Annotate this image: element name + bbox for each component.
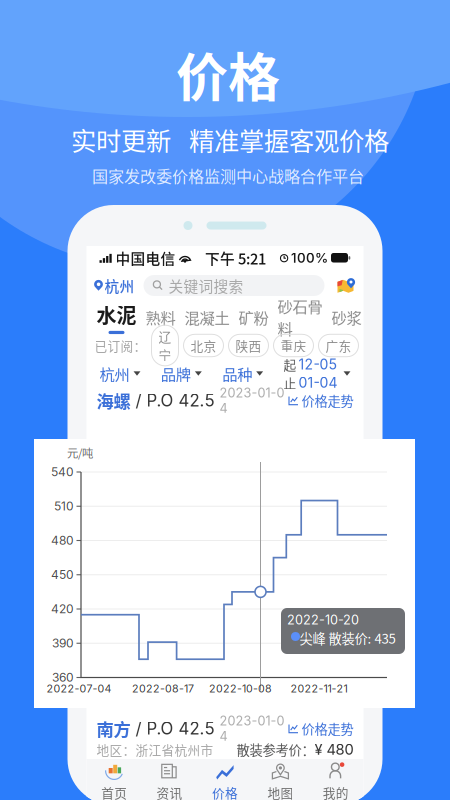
staticText: 510 — [54, 499, 74, 513]
staticText: P.O 42.5 — [146, 718, 214, 739]
staticText: 360 — [52, 670, 74, 685]
staticText: 2023-01-04 — [219, 385, 284, 416]
staticText: 砂浆 — [331, 306, 361, 328]
staticText: 矿粉 — [238, 306, 268, 328]
staticText: 100% — [291, 250, 328, 266]
button[interactable]: 品牌 — [161, 362, 202, 385]
button[interactable]: 我的 — [308, 759, 363, 800]
staticText: 国家发改委价格监测中心战略合作平台 — [92, 164, 364, 187]
staticText: 砂石骨料 — [277, 295, 322, 339]
staticText: 2022-07-04 — [46, 682, 111, 695]
staticText: 我的 — [323, 783, 349, 800]
staticText: 2022-11-21 — [290, 682, 347, 695]
button[interactable]: 杭州 — [99, 362, 140, 385]
button[interactable]: 北京 — [178, 334, 223, 357]
staticText: ¥ 480 — [314, 741, 353, 758]
staticText: 地图 — [267, 783, 293, 800]
staticText: 陕西 — [235, 336, 261, 355]
button[interactable]: 重庆 — [268, 334, 313, 357]
staticText: 2023-01-04 — [219, 713, 284, 744]
staticText: 海螺 — [96, 388, 130, 413]
button[interactable]: 地图 — [337, 278, 356, 293]
staticText: 2022-10-20 — [287, 612, 359, 628]
staticText: 实时更新 精准掌握客观价格 — [71, 121, 389, 158]
staticText: 散装参考价： — [236, 740, 314, 759]
button[interactable]: 陕西 — [223, 334, 268, 357]
staticText: 2022-08-17 — [132, 682, 194, 695]
staticText: 品牌 — [161, 362, 191, 385]
staticText: 01-04 — [298, 374, 337, 391]
staticText: 关键词搜索 — [168, 275, 243, 296]
staticText: 南方 — [96, 716, 130, 741]
staticText: 价格走势 — [301, 719, 353, 738]
button[interactable]: 起 — [283, 355, 350, 392]
button[interactable]: 混凝土 — [175, 306, 229, 328]
staticText: 价格 — [176, 36, 280, 112]
button[interactable]: 广东 — [313, 334, 358, 357]
staticText: 资讯 — [157, 783, 183, 800]
staticText: 中国电信 — [115, 247, 175, 269]
staticText: 水泥 — [96, 300, 136, 329]
staticText: 辽宁 — [158, 327, 171, 364]
staticText: / — [130, 718, 146, 739]
button[interactable]: 资讯 — [142, 759, 197, 800]
staticText: 杭州 — [104, 275, 134, 296]
staticText: 品种 — [222, 362, 252, 385]
staticText: 450 — [51, 567, 74, 582]
staticText: 12-05 — [298, 356, 337, 373]
button[interactable]: 南方 — [86, 717, 363, 740]
button[interactable]: 辽宁 — [146, 325, 178, 366]
button[interactable]: 水泥 — [96, 300, 136, 334]
button[interactable]: 海螺 — [86, 389, 363, 412]
staticText: 北京 — [190, 336, 216, 355]
staticText: 元/吨 — [67, 444, 93, 461]
staticText: 熟料 — [145, 306, 175, 328]
staticText: 2022-10-08 — [209, 682, 272, 695]
staticText: 首页 — [101, 783, 127, 800]
staticText: 下午 5:21 — [205, 247, 266, 269]
staticText: 540 — [51, 465, 74, 479]
staticText: 420 — [51, 602, 74, 616]
button[interactable]: 价格 — [197, 759, 253, 800]
staticText: 广东 — [325, 336, 351, 355]
button[interactable]: 砂石骨料 — [268, 295, 322, 339]
staticText: 价格 — [212, 783, 238, 800]
staticText: 止 — [283, 373, 296, 392]
staticText: / — [130, 390, 146, 411]
staticText: 390 — [52, 636, 74, 650]
button[interactable]: 品种 — [222, 362, 263, 385]
staticText: 地区：浙江省杭州市 — [96, 740, 213, 759]
staticText: 480 — [51, 533, 74, 548]
staticText: 杭州 — [99, 362, 129, 385]
staticText: 混凝土 — [184, 306, 229, 328]
staticText: 价格走势 — [301, 391, 353, 410]
staticText: 已订阅： — [94, 336, 146, 355]
button[interactable]: 首页 — [86, 759, 142, 800]
button[interactable]: 矿粉 — [229, 306, 268, 328]
staticText: 尖峰 散装价: 435 — [299, 628, 395, 648]
button[interactable]: 熟料 — [136, 306, 175, 328]
staticText: 起 — [283, 355, 296, 373]
button[interactable]: 杭州 — [93, 275, 134, 296]
staticText: P.O 42.5 — [146, 390, 214, 411]
staticText: 重庆 — [280, 336, 306, 355]
button[interactable]: 地图 — [253, 759, 308, 800]
button[interactable]: 砂浆 — [322, 306, 361, 328]
